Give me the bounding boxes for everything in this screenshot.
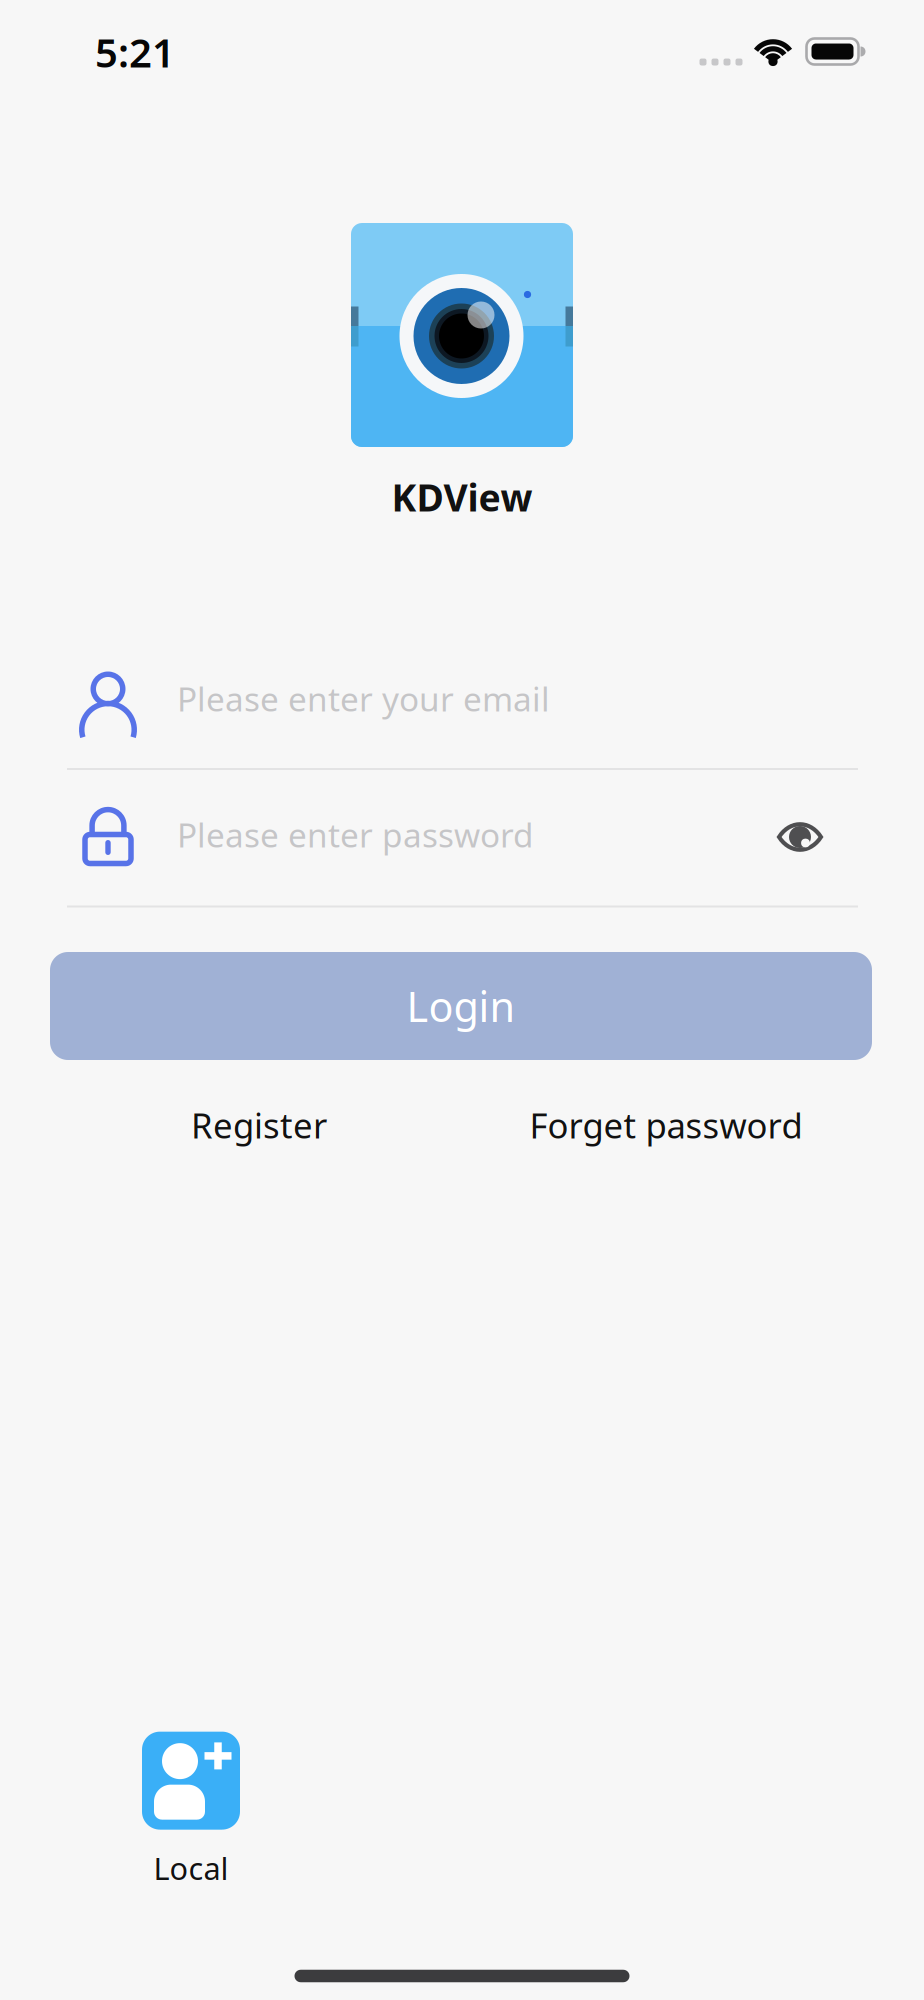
staticText: Register [191, 1102, 327, 1148]
button[interactable]: Local [142, 1732, 240, 1888]
staticText: Forget password [529, 1102, 802, 1148]
button[interactable]: Forget password [529, 1102, 802, 1148]
staticText: Please enter password [177, 812, 534, 857]
staticText: Please enter your email [177, 676, 550, 721]
button[interactable]: Login [50, 952, 872, 1060]
button[interactable]: Please enter your email [68, 650, 858, 754]
button[interactable]: Please enter password [68, 786, 858, 890]
button[interactable] [770, 812, 830, 862]
staticText: Login [406, 979, 515, 1033]
staticText: 5:21 [95, 25, 175, 78]
button[interactable]: Register [191, 1102, 327, 1148]
staticText: Local [153, 1848, 228, 1888]
staticText: KDView [391, 472, 532, 522]
